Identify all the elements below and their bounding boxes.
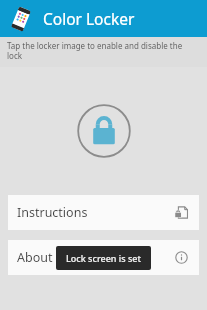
staticText: Tap the locker image to enable and disab… [7, 40, 195, 61]
staticText: Lock screen is set [66, 252, 141, 264]
other: Instructions [175, 206, 188, 219]
staticText: Instructions [17, 204, 88, 221]
staticText: Color Locker [43, 8, 135, 29]
button[interactable]: Toggle lock screen [77, 104, 131, 158]
staticText: About us [17, 249, 70, 266]
button[interactable]: About us [8, 240, 199, 275]
button[interactable]: Instructions [8, 195, 199, 230]
other: Color Locker logo [8, 6, 34, 32]
other: About us [175, 251, 188, 264]
